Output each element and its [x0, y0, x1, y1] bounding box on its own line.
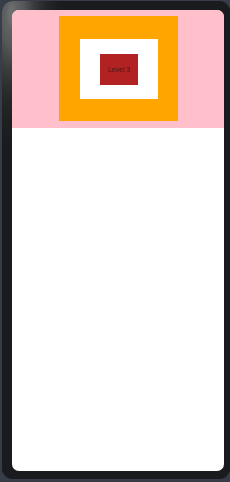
button[interactable]: Level 3 — [100, 54, 138, 85]
staticText: Level 3 — [108, 65, 131, 75]
